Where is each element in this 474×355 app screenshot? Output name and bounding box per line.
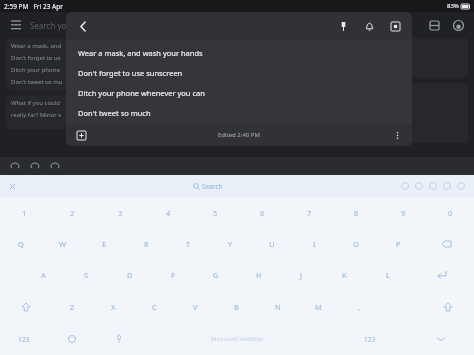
button[interactable]: B [216,291,257,323]
button[interactable]: Wear a mask, and [6,38,234,90]
button[interactable]: What if you could [6,95,234,129]
button[interactable]: D [108,259,151,291]
button[interactable]: Wear a mask, and wash your hands [66,40,412,124]
staticText: P [396,239,401,249]
button[interactable]: Hide keyboard [408,323,474,355]
staticText: 1 [22,208,27,218]
staticText: S [84,270,89,280]
staticText: 9 [401,208,406,218]
button[interactable]: Search [193,182,223,191]
button[interactable]: R [125,228,167,259]
button[interactable]: O [335,228,377,259]
staticText: Don't tweet so mu [11,78,63,86]
button[interactable]: H [237,259,280,291]
staticText: L [386,270,390,280]
button[interactable]: 8 [333,197,380,228]
button[interactable]: 123 [332,323,408,355]
button[interactable]: W [41,228,83,259]
button[interactable]: C [134,291,175,323]
button[interactable]: 5 [192,197,239,228]
button[interactable]: M [298,291,339,323]
button[interactable]: A [22,259,65,291]
button[interactable]: I [293,228,335,259]
button[interactable]: Settings [454,179,468,193]
button[interactable]: S [65,259,108,291]
button[interactable]: Reminder [360,17,378,35]
button[interactable]: Emoji [398,179,412,193]
staticText: Wear a mask, and wash your hands [78,48,203,58]
button[interactable]: Redo [28,159,42,173]
button[interactable]: Voice input [95,323,142,355]
button[interactable]: Emoji [48,323,95,355]
button[interactable]: Z [52,291,93,323]
button[interactable]: 123 [0,323,48,355]
button[interactable]: Camera [426,179,440,193]
button[interactable]: GIF [412,179,426,193]
button[interactable]: X [93,291,134,323]
button[interactable]: Space [142,323,332,355]
staticText: 123 [364,335,376,344]
button[interactable]: Pin [334,17,352,35]
staticText: V [193,302,198,312]
button[interactable]: Enter [409,259,474,291]
button[interactable]: Shift [0,291,52,323]
button[interactable]: Undo [8,159,22,173]
staticText: 8 [354,208,359,218]
button[interactable]: 4 [144,197,192,228]
button[interactable]: Y [209,228,251,259]
button[interactable]: P [377,228,419,259]
button[interactable]: Q [0,228,41,259]
staticText: . [399,302,402,312]
button[interactable]: Clipboard [440,179,454,193]
button[interactable]: Back [74,17,92,35]
button[interactable]: Backspace [419,228,474,259]
button[interactable]: U [251,228,293,259]
staticText: I [313,239,316,249]
staticText: O [353,239,359,249]
button[interactable] [239,38,468,78]
button[interactable]: T [167,228,209,259]
staticText: D [127,270,133,280]
button[interactable]: L [366,259,409,291]
staticText: Ditch your phone [11,66,60,74]
staticText: 123 [18,335,30,344]
button[interactable]: N [257,291,298,323]
button[interactable]: Copy [48,159,62,173]
button[interactable]: 6 [239,197,286,228]
button[interactable]: E [83,228,125,259]
staticText: really far? Minor s [11,111,62,119]
button[interactable]: 0 [427,197,474,228]
staticText: Don't tweet so much [78,108,151,118]
button[interactable]: Account [450,17,466,33]
button[interactable]: 7 [286,197,333,228]
staticText: F [171,270,175,280]
button[interactable]: G [194,259,237,291]
staticText: H [256,270,262,280]
button[interactable]: Archive [386,17,404,35]
staticText: M [315,302,322,312]
button[interactable]: K [323,259,366,291]
button[interactable]: 1 [0,197,48,228]
staticText: X [111,302,116,312]
staticText: Z [70,302,75,312]
button[interactable]: V [175,291,216,323]
staticText: T [186,239,191,249]
button[interactable]: More options [389,127,405,143]
staticText: Microsoft SwiftKey [211,335,263,343]
staticText: Don't forget to use sunscreen [78,68,183,78]
button[interactable]: Add [73,127,89,143]
button[interactable]: Shift [421,291,474,323]
staticText: Search your notes [30,20,98,31]
button[interactable]: Close [6,180,18,192]
button[interactable]: Menu [8,17,24,33]
button[interactable]: J [280,259,323,291]
staticText: 2 [70,208,75,218]
button[interactable]: rmeric and [239,83,468,143]
button[interactable]: 3 [96,197,144,228]
button[interactable]: 2 [48,197,96,228]
button[interactable]: List view [426,17,442,33]
button[interactable]: 9 [380,197,427,228]
button[interactable]: F [151,259,194,291]
